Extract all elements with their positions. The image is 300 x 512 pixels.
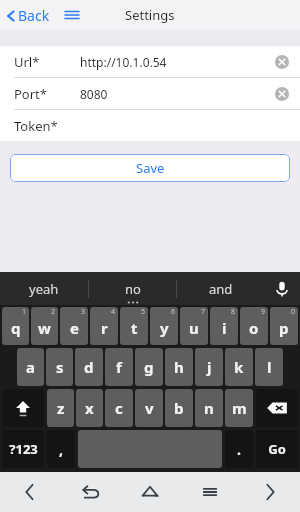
button[interactable]: l xyxy=(255,348,283,386)
staticText: , xyxy=(59,440,63,459)
staticText: j xyxy=(207,357,212,377)
staticText: no xyxy=(125,280,141,298)
button[interactable]: d xyxy=(75,348,103,386)
staticText: Settings xyxy=(125,6,175,24)
button[interactable]: Url* xyxy=(0,46,300,77)
button[interactable]: k xyxy=(225,348,253,386)
staticText: d xyxy=(84,357,94,377)
button[interactable]: 6 xyxy=(150,307,178,345)
button[interactable]: x xyxy=(76,389,103,427)
button[interactable]: Home xyxy=(120,472,180,512)
staticText: w xyxy=(38,318,51,338)
staticText: 6 xyxy=(171,307,176,317)
button[interactable]: Recents xyxy=(180,472,240,512)
button[interactable]: Clear xyxy=(274,86,290,102)
staticText: q xyxy=(11,318,21,338)
button[interactable]: v xyxy=(135,389,163,427)
staticText: g xyxy=(144,357,154,377)
staticText: i xyxy=(222,318,227,338)
button[interactable]: no xyxy=(89,272,176,305)
button[interactable]: n xyxy=(195,389,223,427)
button[interactable]: 9 xyxy=(240,307,268,345)
button[interactable]: f xyxy=(105,348,133,386)
staticText: Back xyxy=(18,6,50,25)
staticText: l xyxy=(267,357,272,377)
staticText: 1 xyxy=(22,307,27,317)
staticText: 7 xyxy=(201,307,206,317)
staticText: p xyxy=(279,318,289,338)
button[interactable]: 3 xyxy=(60,307,88,345)
button[interactable]: 8 xyxy=(210,307,238,345)
button[interactable]: Token* xyxy=(0,110,300,141)
button[interactable]: j xyxy=(195,348,223,386)
button[interactable]: Back xyxy=(4,6,50,25)
staticText: 0 xyxy=(291,307,296,317)
staticText: Url* xyxy=(14,53,40,71)
button[interactable]: s xyxy=(46,348,73,386)
button[interactable]: z xyxy=(47,389,74,427)
button[interactable]: and xyxy=(177,272,264,305)
button[interactable]: 5 xyxy=(120,307,148,345)
staticText: v xyxy=(145,398,154,418)
staticText: o xyxy=(249,318,259,338)
staticText: k xyxy=(234,357,244,377)
button[interactable]: Shift xyxy=(2,389,44,427)
button[interactable]: 4 xyxy=(90,307,118,345)
button[interactable]: , xyxy=(47,430,75,468)
button[interactable]: Go xyxy=(256,430,298,468)
button[interactable]: Next xyxy=(240,472,300,512)
button[interactable]: 0 xyxy=(270,307,298,345)
staticText: 5 xyxy=(141,307,146,317)
button[interactable]: Back xyxy=(60,472,120,512)
button[interactable]: c xyxy=(105,389,133,427)
staticText: Token* xyxy=(14,117,58,135)
staticText: h xyxy=(174,357,184,377)
staticText: a xyxy=(26,357,35,377)
button[interactable]: Clear xyxy=(274,54,290,70)
staticText: yeah xyxy=(29,280,59,298)
button[interactable]: Menu xyxy=(62,5,82,25)
staticText: Save xyxy=(136,159,165,177)
button[interactable]: Voice input xyxy=(264,272,300,305)
button[interactable]: 7 xyxy=(180,307,208,345)
staticText: 8 xyxy=(231,307,236,317)
staticText: c xyxy=(115,398,123,418)
staticText: n xyxy=(204,398,214,418)
button[interactable]: Previous xyxy=(0,472,60,512)
staticText: e xyxy=(70,318,79,338)
staticText: and xyxy=(209,280,233,298)
button[interactable]: yeah xyxy=(0,272,88,305)
staticText: Go xyxy=(268,440,286,458)
staticText: 9 xyxy=(261,307,266,317)
button[interactable]: h xyxy=(165,348,193,386)
staticText: x xyxy=(85,398,94,418)
button[interactable]: b xyxy=(165,389,193,427)
staticText: http://10.1.0.54 xyxy=(80,54,274,70)
staticText: z xyxy=(57,398,65,418)
button[interactable]: Port* xyxy=(0,78,300,109)
button[interactable]: Backspace xyxy=(256,389,298,427)
staticText: 3 xyxy=(81,307,86,317)
button[interactable]: g xyxy=(135,348,163,386)
staticText: b xyxy=(174,398,184,418)
button[interactable]: 2 xyxy=(31,307,58,345)
button[interactable]: 1 xyxy=(2,307,29,345)
staticText: t xyxy=(131,318,138,338)
button[interactable]: ?123 xyxy=(2,430,44,468)
button[interactable]: . xyxy=(225,430,253,468)
staticText: 2 xyxy=(51,307,56,317)
staticText: s xyxy=(56,357,64,377)
staticText: 4 xyxy=(111,307,116,317)
staticText: Port* xyxy=(14,85,47,103)
button[interactable]: Save xyxy=(10,154,290,182)
button[interactable]: a xyxy=(17,348,44,386)
staticText: m xyxy=(232,398,247,418)
staticText: . xyxy=(237,440,241,459)
staticText: r xyxy=(101,318,108,338)
button[interactable]: m xyxy=(225,389,253,427)
staticText: u xyxy=(189,318,199,338)
staticText: f xyxy=(116,357,122,377)
staticText: y xyxy=(160,318,169,338)
